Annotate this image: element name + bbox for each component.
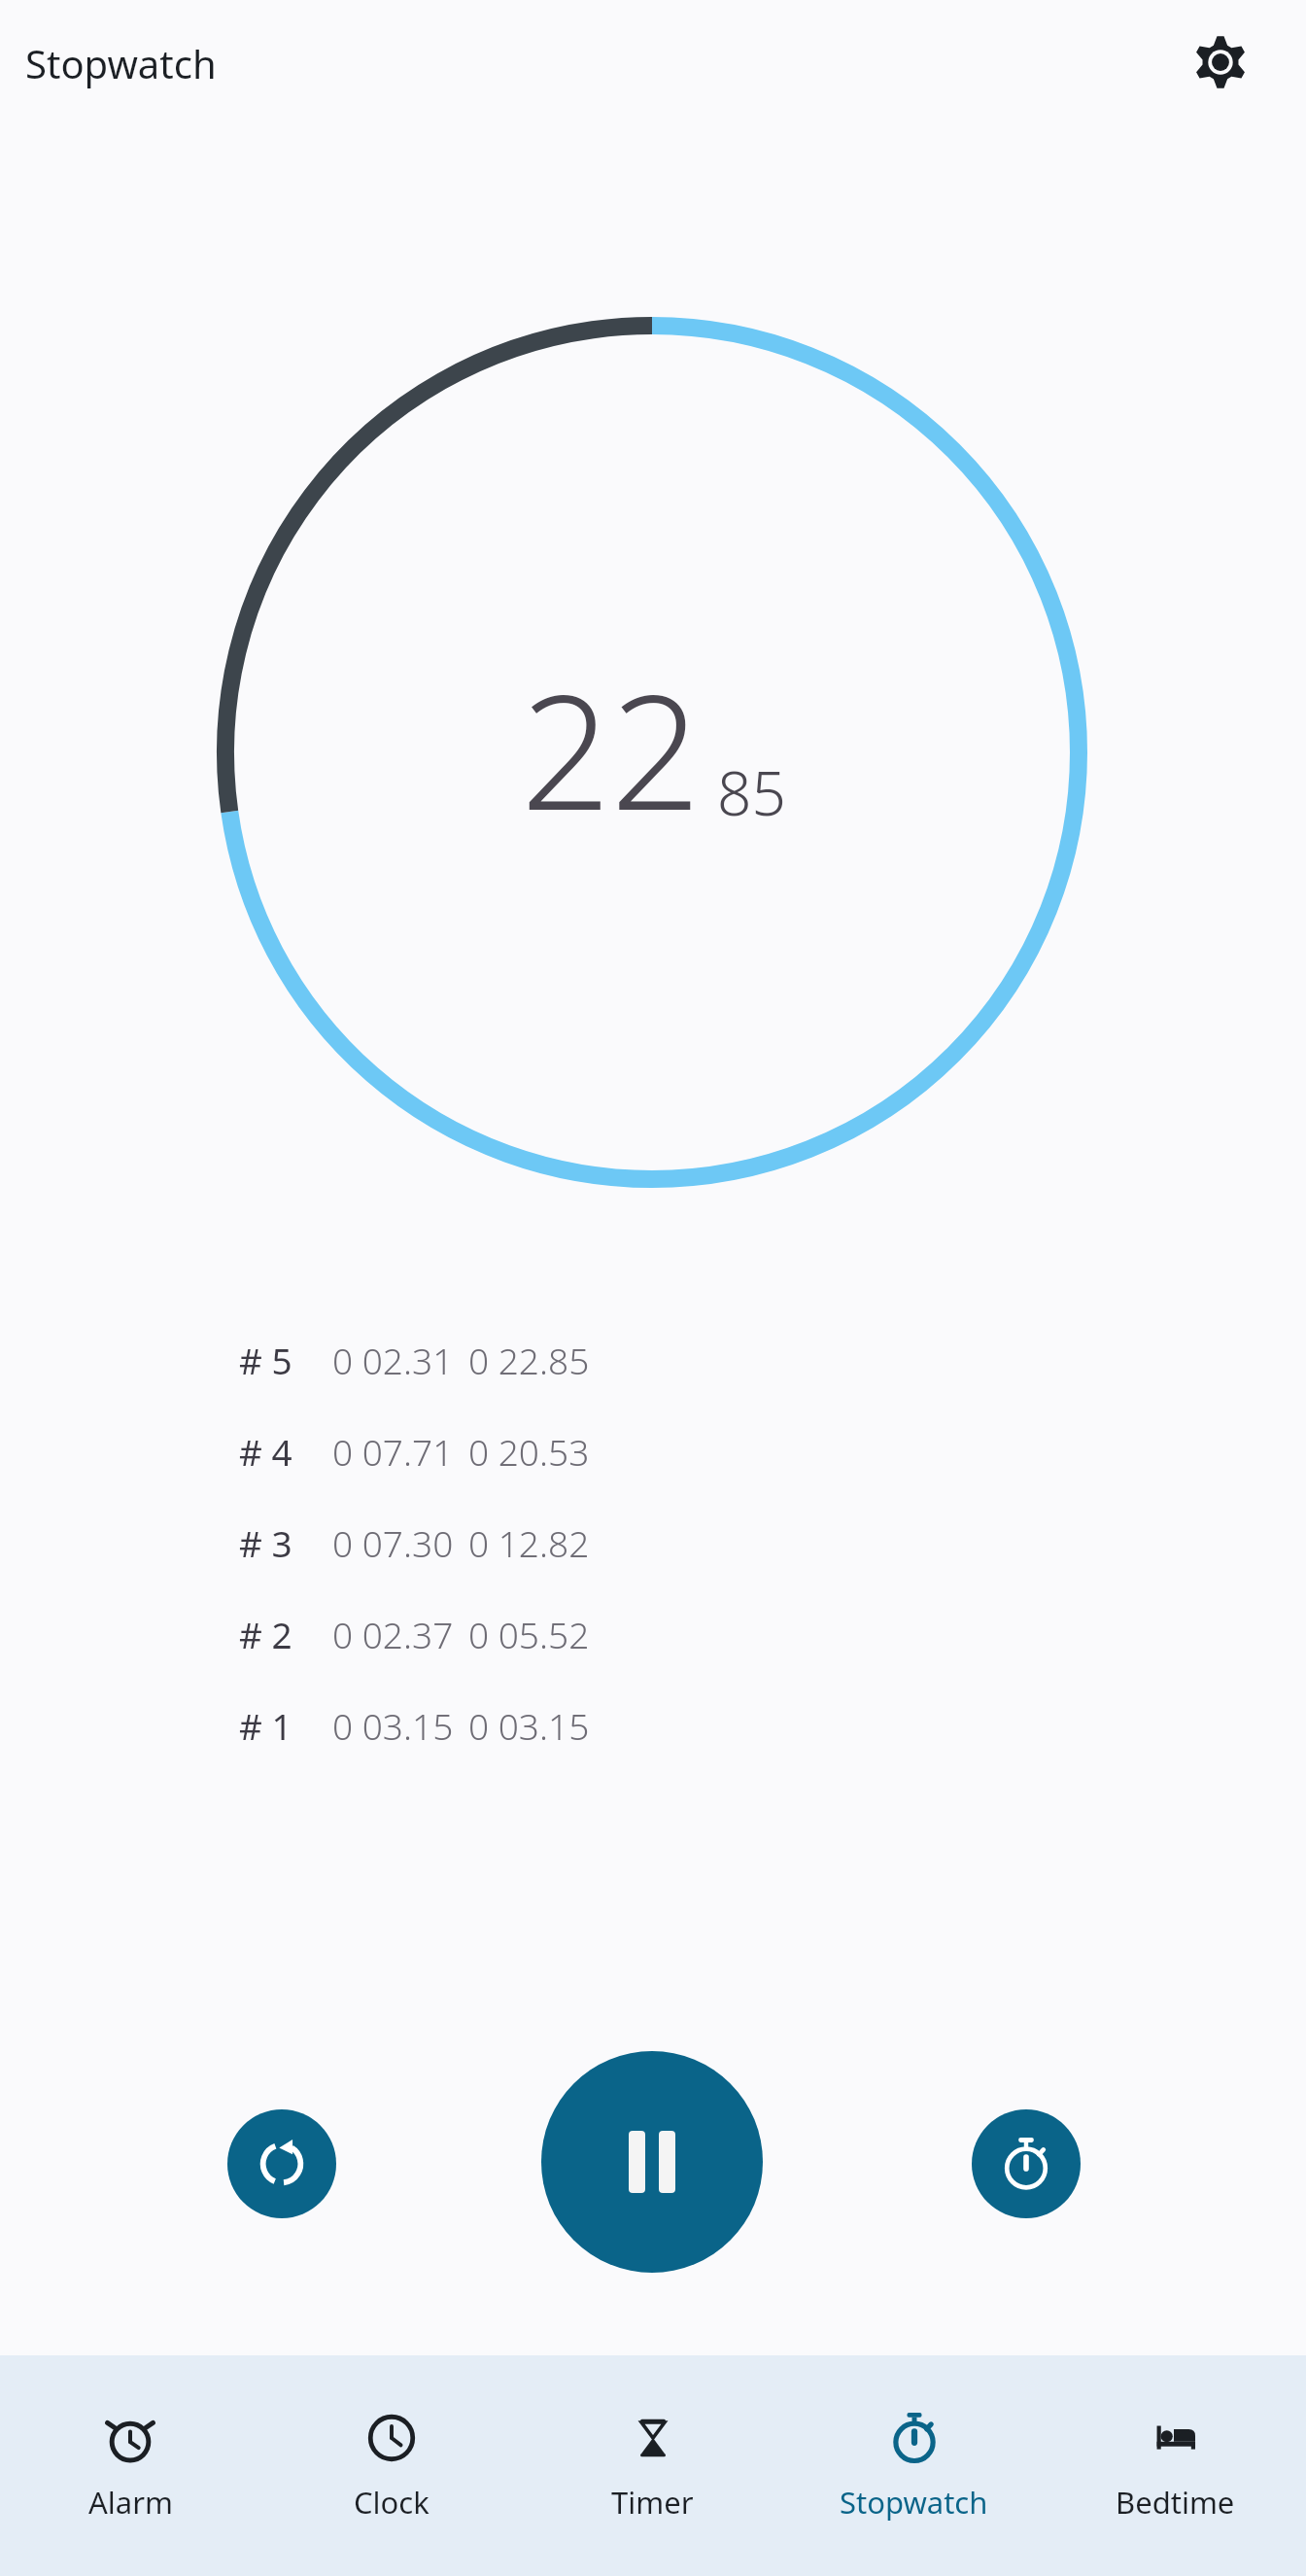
button[interactable]: Settings xyxy=(1174,16,1267,109)
button[interactable]: Alarm xyxy=(0,2355,260,2576)
staticText: 0 20.53 xyxy=(468,1427,590,1476)
staticText: 0 22.85 xyxy=(468,1336,590,1384)
staticText: # 3 xyxy=(239,1518,292,1567)
staticText: # 1 xyxy=(239,1701,292,1750)
staticText: 0 05.52 xyxy=(468,1610,590,1658)
button[interactable]: Reset xyxy=(227,2109,336,2218)
button[interactable]: # 5 xyxy=(0,1314,1306,1406)
staticText: # 4 xyxy=(239,1427,292,1476)
staticText: Clock xyxy=(354,2482,430,2523)
staticText: 0 03.15 xyxy=(468,1701,590,1750)
staticText: # 5 xyxy=(239,1336,292,1384)
button[interactable]: # 2 xyxy=(0,1588,1306,1680)
staticText: 0 02.37 xyxy=(332,1610,454,1658)
button[interactable]: # 1 xyxy=(0,1680,1306,1771)
staticText: Timer xyxy=(611,2482,694,2523)
staticText: Bedtime xyxy=(1116,2482,1235,2523)
button[interactable]: Timer xyxy=(522,2355,783,2576)
staticText: 0 03.15 xyxy=(332,1701,454,1750)
staticText: 0 07.71 xyxy=(332,1427,454,1476)
button[interactable]: Lap xyxy=(972,2109,1081,2218)
staticText: # 2 xyxy=(239,1610,292,1658)
staticText: 0 12.82 xyxy=(468,1518,590,1567)
button[interactable]: Pause xyxy=(541,2051,763,2273)
button[interactable]: # 3 xyxy=(0,1497,1306,1588)
button[interactable]: Stopwatch xyxy=(783,2355,1045,2576)
staticText: Alarm xyxy=(88,2482,173,2523)
staticText: 0 02.31 xyxy=(332,1336,454,1384)
staticText: 85 xyxy=(717,751,786,833)
staticText: 0 07.30 xyxy=(332,1518,454,1567)
staticText: Stopwatch xyxy=(25,37,217,89)
button[interactable]: Bedtime xyxy=(1045,2355,1306,2576)
staticText: 22 xyxy=(521,642,702,856)
staticText: Stopwatch xyxy=(840,2482,988,2523)
button[interactable]: # 4 xyxy=(0,1406,1306,1497)
button[interactable]: Clock xyxy=(260,2355,522,2576)
